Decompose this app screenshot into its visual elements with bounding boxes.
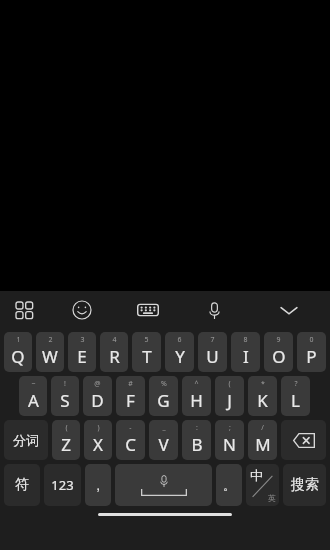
button[interactable]: ^ bbox=[182, 376, 211, 416]
staticText: F bbox=[126, 389, 135, 412]
button[interactable]: Keyboard layout bbox=[115, 291, 180, 329]
button[interactable]: 9 bbox=[264, 332, 293, 372]
staticText: % bbox=[161, 379, 167, 389]
staticText: N bbox=[223, 433, 236, 456]
staticText: 2 bbox=[48, 335, 53, 345]
button[interactable]: 2 bbox=[36, 332, 64, 372]
button[interactable]: ! bbox=[51, 376, 79, 416]
button[interactable]: 0 bbox=[297, 332, 326, 372]
button[interactable]: 5 bbox=[132, 332, 161, 372]
staticText: - bbox=[129, 423, 132, 433]
staticText: 分词 bbox=[13, 432, 39, 448]
staticText: V bbox=[158, 433, 169, 456]
button[interactable]: Apps bbox=[0, 291, 49, 329]
button[interactable]: 3 bbox=[68, 332, 96, 372]
button[interactable]: 4 bbox=[100, 332, 128, 372]
staticText: U bbox=[206, 345, 219, 368]
staticText: P bbox=[306, 345, 317, 368]
button[interactable]: ) bbox=[84, 420, 112, 460]
staticText: I bbox=[243, 345, 249, 368]
staticText: S bbox=[60, 389, 70, 412]
staticText: Z bbox=[61, 433, 71, 456]
button[interactable]: # bbox=[116, 376, 145, 416]
staticText: 搜索 bbox=[291, 476, 319, 494]
staticText: _ bbox=[162, 423, 166, 433]
staticText: K bbox=[257, 389, 268, 412]
staticText: Q bbox=[11, 345, 25, 368]
staticText: ? bbox=[294, 379, 298, 389]
button[interactable]: 。 bbox=[216, 464, 242, 506]
staticText: ( bbox=[65, 423, 68, 433]
staticText: H bbox=[190, 389, 203, 412]
staticText: E bbox=[77, 345, 87, 368]
staticText: / bbox=[261, 423, 264, 433]
button[interactable]: 7 bbox=[198, 332, 227, 372]
staticText: # bbox=[128, 379, 133, 389]
button[interactable]: ( bbox=[52, 420, 80, 460]
button[interactable]: 1 bbox=[4, 332, 32, 372]
button[interactable]: Emoji bbox=[49, 291, 115, 329]
button[interactable]: 8 bbox=[231, 332, 260, 372]
staticText: 8 bbox=[243, 335, 248, 345]
staticText: ) bbox=[97, 423, 100, 433]
staticText: A bbox=[28, 389, 39, 412]
staticText: X bbox=[93, 433, 103, 456]
button[interactable]: Backspace bbox=[281, 420, 326, 460]
staticText: R bbox=[109, 345, 120, 368]
staticText: ; bbox=[229, 423, 231, 433]
staticText: 5 bbox=[144, 335, 149, 345]
staticText: G bbox=[157, 389, 170, 412]
staticText: ^ bbox=[194, 379, 199, 389]
staticText: 6 bbox=[177, 335, 182, 345]
button[interactable]: ~ bbox=[19, 376, 47, 416]
button[interactable]: 符 bbox=[4, 464, 40, 506]
button[interactable]: 6 bbox=[165, 332, 194, 372]
button[interactable]: @ bbox=[83, 376, 112, 416]
staticText: D bbox=[91, 389, 104, 412]
staticText: W bbox=[42, 345, 58, 368]
button[interactable]: : bbox=[182, 420, 211, 460]
staticText: ~ bbox=[31, 379, 36, 389]
button[interactable]: Voice input bbox=[180, 291, 248, 329]
staticText: 4 bbox=[112, 335, 117, 345]
button[interactable]: 123 bbox=[44, 464, 81, 506]
button[interactable]: / bbox=[248, 420, 277, 460]
button[interactable]: 搜索 bbox=[283, 464, 326, 506]
button[interactable]: Hide keyboard bbox=[248, 291, 330, 329]
staticText: 3 bbox=[80, 335, 85, 345]
staticText: 1 bbox=[16, 335, 21, 345]
staticText: Y bbox=[175, 345, 185, 368]
button[interactable]: 分词 bbox=[4, 420, 48, 460]
staticText: 0 bbox=[309, 335, 314, 345]
staticText: L bbox=[291, 389, 300, 412]
staticText: ， bbox=[92, 478, 104, 493]
button[interactable]: ? bbox=[281, 376, 310, 416]
button[interactable]: Space, voice input bbox=[115, 464, 212, 506]
staticText: ! bbox=[64, 379, 66, 389]
button[interactable]: Chinese English toggle bbox=[246, 464, 279, 506]
staticText: M bbox=[255, 433, 271, 456]
button[interactable]: ， bbox=[85, 464, 111, 506]
staticText: 9 bbox=[276, 335, 281, 345]
staticText: 7 bbox=[210, 335, 215, 345]
staticText: 中 bbox=[250, 467, 263, 483]
staticText: * bbox=[261, 379, 265, 389]
staticText: O bbox=[272, 345, 286, 368]
button[interactable]: * bbox=[248, 376, 277, 416]
staticText: ( bbox=[228, 379, 231, 389]
button[interactable]: - bbox=[116, 420, 145, 460]
staticText: 英 bbox=[268, 493, 276, 503]
button[interactable]: ( bbox=[215, 376, 244, 416]
staticText: B bbox=[191, 433, 203, 456]
staticText: 。 bbox=[223, 478, 235, 493]
staticText: J bbox=[227, 389, 232, 412]
button[interactable]: % bbox=[149, 376, 178, 416]
button[interactable]: ; bbox=[215, 420, 244, 460]
staticText: 123 bbox=[51, 476, 74, 494]
button[interactable]: _ bbox=[149, 420, 178, 460]
staticText: T bbox=[142, 345, 152, 368]
staticText: 符 bbox=[15, 476, 29, 494]
staticText: @ bbox=[94, 379, 101, 389]
staticText: : bbox=[196, 423, 198, 433]
staticText: C bbox=[125, 433, 136, 456]
